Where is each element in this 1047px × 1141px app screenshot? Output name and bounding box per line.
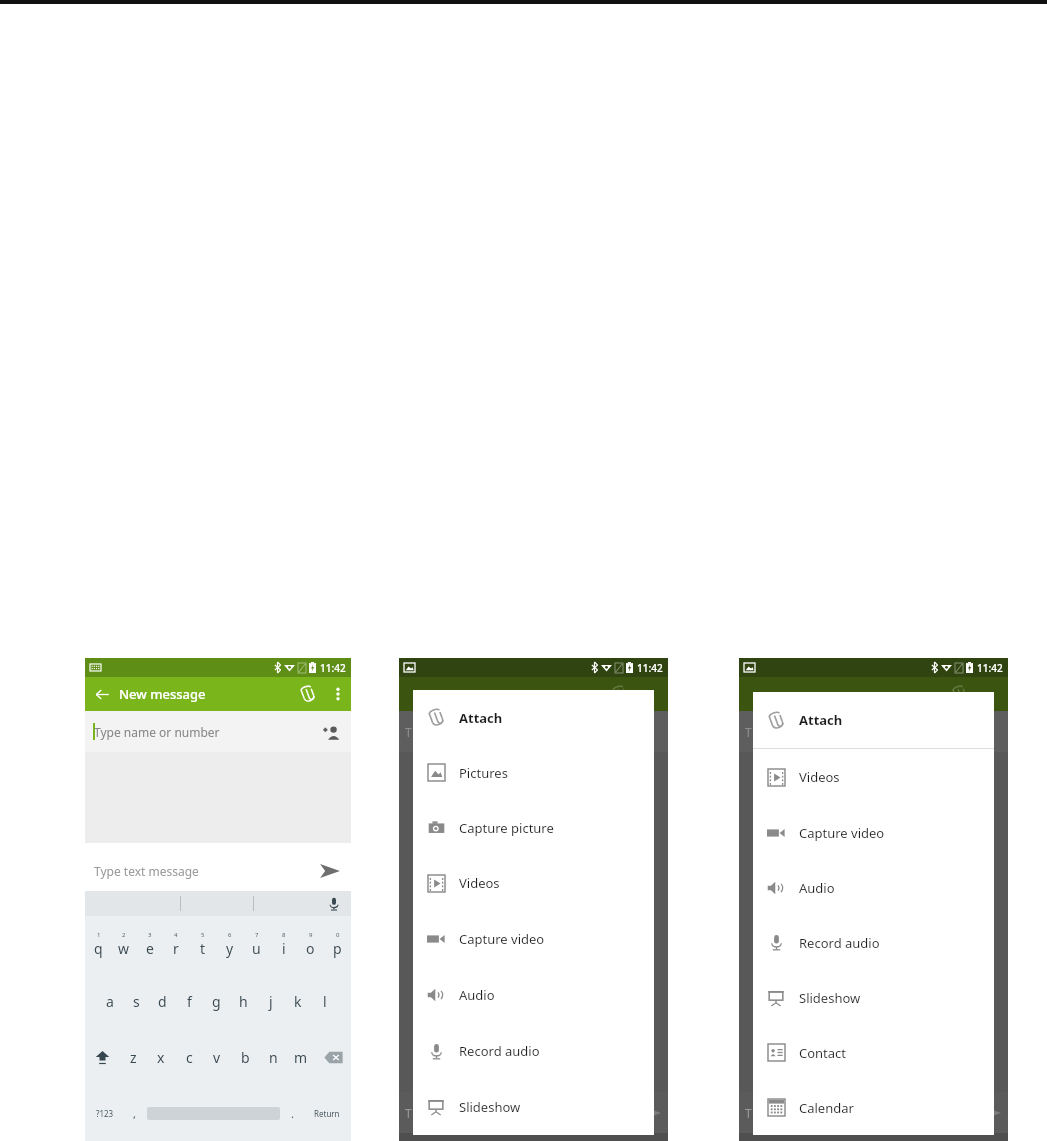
staticText: Slideshow [459,1098,521,1116]
staticText: Pictures [459,764,508,782]
button[interactable]: l [311,973,338,1029]
staticText: 0 [336,931,340,939]
staticText: T [405,724,412,740]
button[interactable]: 4 [163,916,189,973]
button[interactable]: d [149,973,176,1029]
staticText: k [294,992,302,1011]
staticText: Slideshow [799,989,861,1007]
button[interactable]: Calendar [753,1080,994,1135]
staticText: New message [119,685,206,703]
staticText: c [186,1048,193,1067]
button[interactable]: Shift [85,1029,120,1085]
staticText: 2 [122,931,126,939]
staticText: o [306,939,315,958]
button[interactable]: h [230,973,257,1029]
staticText: Capture video [799,824,885,842]
button[interactable]: a [97,973,123,1029]
button[interactable]: 6 [216,916,243,973]
staticText: p [333,939,342,958]
button[interactable]: Slideshow [753,970,994,1025]
button[interactable]: Attach [291,677,325,711]
button[interactable]: Audio [413,967,654,1023]
button[interactable]: Record audio [753,915,994,970]
staticText: r [173,939,179,958]
staticText: y [226,939,234,958]
button[interactable]: 8 [270,916,297,973]
button[interactable]: Record audio [413,1023,654,1079]
button[interactable]: 9 [297,916,324,973]
button[interactable]: Contact [753,1025,994,1080]
staticText: n [269,1048,278,1067]
button[interactable]: 5 [189,916,216,973]
button[interactable]: Add contact [317,718,345,746]
staticText: Attach [799,711,843,729]
button[interactable]: c [175,1029,203,1085]
button[interactable]: Videos [753,749,994,805]
button[interactable]: Capture video [753,805,994,860]
staticText: a [106,992,114,1011]
staticText: Audio [459,986,495,1004]
staticText: x [157,1048,165,1067]
staticText: Calendar [799,1099,854,1117]
button[interactable]: Capture picture [413,800,654,855]
button[interactable]: , [124,1085,145,1141]
button[interactable]: 7 [243,916,270,973]
staticText: 6 [228,931,232,939]
staticText: l [323,992,327,1011]
button[interactable]: b [231,1029,259,1085]
button[interactable]: m [287,1029,315,1085]
staticText: e [146,939,154,958]
button[interactable]: Slideshow [413,1079,654,1135]
staticText: Capture picture [459,819,554,837]
button[interactable]: j [257,973,284,1029]
staticText: , [133,1106,136,1121]
button[interactable]: Pictures [413,745,654,800]
staticText: T [405,1105,412,1121]
button[interactable]: Voice input [323,893,345,915]
button[interactable]: Attach [753,692,994,748]
staticText: Capture video [459,930,545,948]
staticText: 11:42 [637,661,663,675]
button[interactable]: g [203,973,230,1029]
button[interactable]: Capture video [413,911,654,967]
staticText: s [133,992,140,1011]
button[interactable]: k [284,973,311,1029]
staticText: Return [314,1108,340,1119]
button[interactable]: 2 [111,916,137,973]
staticText: 11:42 [977,661,1003,675]
staticText: g [212,992,221,1011]
staticText: T [745,1105,752,1121]
staticText: q [94,939,103,958]
staticText: 5 [201,931,205,939]
button[interactable]: z [120,1029,147,1085]
button[interactable]: Delete [315,1029,351,1085]
button[interactable]: Videos [413,855,654,911]
button[interactable]: Audio [753,860,994,915]
button[interactable]: Back [85,677,119,711]
button[interactable]: Attach [413,690,654,745]
staticText: h [239,992,248,1011]
button[interactable]: ?123 [85,1085,124,1141]
button[interactable]: x [147,1029,175,1085]
button[interactable]: s [123,973,149,1029]
staticText: u [252,939,261,958]
staticText: 7 [255,931,259,939]
button[interactable]: Send [314,855,346,887]
staticText: m [294,1048,308,1067]
staticText: Audio [799,879,835,897]
button[interactable]: 0 [324,916,351,973]
button[interactable]: n [259,1029,287,1085]
button[interactable]: 3 [137,916,163,973]
button[interactable]: More options [325,681,351,707]
staticText: . [291,1106,294,1121]
staticText: Videos [799,768,840,786]
button[interactable]: Return [303,1085,351,1141]
button[interactable]: . [282,1085,303,1141]
button[interactable]: 1 [85,916,111,973]
staticText: Record audio [459,1042,540,1060]
staticText: 9 [309,931,313,939]
button[interactable]: v [203,1029,231,1085]
button[interactable]: f [176,973,203,1029]
staticText: z [130,1048,137,1067]
